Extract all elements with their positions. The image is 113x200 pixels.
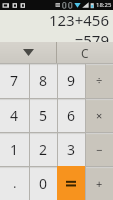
button[interactable]: ÷ [85,63,113,98]
button[interactable]: 1 [0,132,29,166]
button[interactable]: × [85,98,113,132]
button[interactable]: 3 [57,132,85,166]
button[interactable]: 9 [57,63,85,98]
button[interactable]: . [0,166,29,200]
button[interactable]: 4 [0,98,29,132]
button[interactable]: Show history [0,42,56,63]
staticText: ÷ [96,73,103,88]
staticText: 6 [67,106,76,125]
button[interactable]: 7 [0,63,29,98]
button[interactable]: + [85,166,113,200]
staticText: + [96,176,103,191]
button[interactable]: 0 [29,166,57,200]
button[interactable]: − [85,132,113,166]
staticText: 4 [10,106,19,125]
staticText: 3 [67,140,76,159]
staticText: 7 [10,71,19,90]
button[interactable]: C [57,42,113,63]
button[interactable] [57,166,85,200]
staticText: =579 [74,30,109,42]
staticText: 123+456 [48,10,109,30]
button[interactable]: 8 [29,63,57,98]
button[interactable]: 6 [57,98,85,132]
button[interactable]: 2 [29,132,57,166]
staticText: 18:25 [96,1,112,9]
staticText: 1 [10,140,19,159]
button[interactable]: 5 [29,98,57,132]
staticText: C [81,45,89,61]
staticText: 8 [39,71,48,90]
staticText: 0 [39,174,48,193]
staticText: × [96,108,103,123]
staticText: 5 [39,106,48,125]
staticText: − [96,142,103,157]
staticText: . [13,174,17,192]
staticText: 2 [39,140,48,159]
staticText: 9 [67,71,76,90]
